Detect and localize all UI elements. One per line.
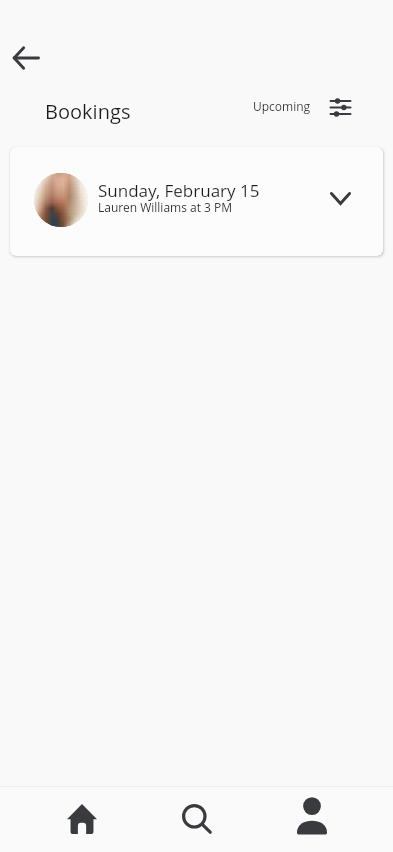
button[interactable]: Upcoming [253, 98, 311, 114]
staticText: Lauren Williams at 3 PM [98, 199, 233, 215]
button[interactable]: Home [24, 787, 139, 852]
button[interactable]: Search [139, 787, 254, 852]
button[interactable]: Back [9, 41, 43, 75]
button[interactable]: Sunday, February 15 [10, 147, 383, 256]
staticText: Sunday, February 15 [98, 179, 260, 202]
button[interactable]: Filter [327, 94, 353, 120]
button[interactable]: Expand booking [325, 183, 355, 213]
button[interactable]: Bookings [45, 98, 131, 125]
button[interactable]: Profile [254, 787, 369, 852]
